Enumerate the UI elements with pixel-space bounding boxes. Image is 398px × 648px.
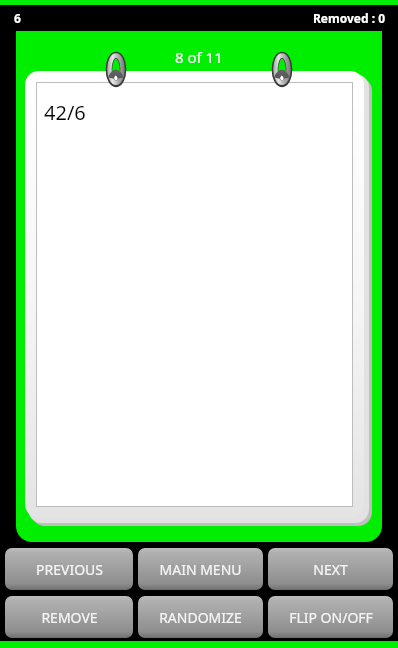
button[interactable]: PREVIOUS [5,548,133,590]
staticText: Removed : 0 [313,10,386,26]
button[interactable]: FLIP ON/OFF [268,596,393,638]
staticText: MAIN MENU [159,560,242,579]
staticText: 6 [14,10,21,26]
staticText: NEXT [313,560,348,579]
staticText: PREVIOUS [36,560,103,579]
staticText: RANDOMIZE [159,608,242,627]
staticText: 42/6 [44,99,86,126]
button[interactable]: MAIN MENU [138,548,263,590]
staticText: REMOVE [41,608,98,627]
staticText: FLIP ON/OFF [289,608,373,627]
button[interactable]: RANDOMIZE [138,596,263,638]
button[interactable]: 42/6 [37,83,352,506]
button[interactable]: REMOVE [5,596,133,638]
other: Binder ring [105,54,127,90]
other: Binder ring [271,54,293,90]
staticText: 8 of 11 [175,47,223,67]
button[interactable]: NEXT [268,548,393,590]
